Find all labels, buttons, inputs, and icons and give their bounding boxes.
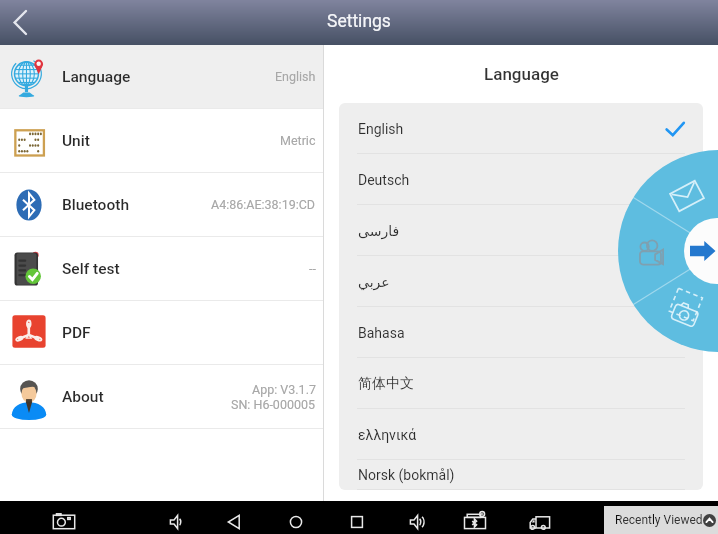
staticText: Deutsch xyxy=(358,172,410,188)
staticText: عربي xyxy=(358,274,390,290)
button[interactable]: Deutsch xyxy=(339,154,703,205)
button[interactable]: About xyxy=(0,365,323,428)
button[interactable]: Recents xyxy=(343,501,371,534)
staticText: A4:86:AE:38:19:CD xyxy=(211,197,316,212)
staticText: 简体中文 xyxy=(358,375,414,393)
button[interactable]: Volume down xyxy=(161,501,189,534)
button[interactable]: Home xyxy=(282,501,310,534)
staticText: Language xyxy=(484,64,559,84)
button[interactable]: Bahasa xyxy=(339,307,703,358)
staticText: SN: H6-000005 xyxy=(231,397,316,412)
staticText: فارسی xyxy=(358,223,400,239)
staticText: English xyxy=(275,69,316,84)
staticText: Settings xyxy=(327,11,391,32)
staticText: Bluetooth xyxy=(62,196,130,214)
staticText: Unit xyxy=(62,132,90,150)
staticText: App: V3.1.7 xyxy=(252,382,316,397)
button[interactable]: Unit xyxy=(0,109,323,172)
staticText: ελληνικά xyxy=(358,427,417,443)
button[interactable]: Norsk (bokmål) xyxy=(339,460,703,490)
other: Quick menu xyxy=(0,0,718,534)
staticText: Recently Viewed xyxy=(615,513,703,527)
button[interactable]: PDF xyxy=(0,301,323,364)
button[interactable]: ελληνικά xyxy=(339,409,703,460)
button[interactable]: Screenshot xyxy=(50,501,78,534)
button[interactable]: Recently Viewed xyxy=(604,506,718,534)
staticText: About xyxy=(62,388,104,406)
staticText: Bahasa xyxy=(358,325,405,341)
staticText: Metric xyxy=(280,133,316,148)
button[interactable]: English xyxy=(339,103,703,154)
staticText: English xyxy=(358,121,404,137)
button[interactable]: Language xyxy=(0,45,323,108)
button[interactable]: Self test xyxy=(0,237,323,300)
staticText: Self test xyxy=(62,260,120,278)
button[interactable]: فارسی xyxy=(339,205,703,256)
button[interactable]: Vehicle xyxy=(526,501,554,534)
staticText: Language xyxy=(62,68,131,86)
staticText: PDF xyxy=(62,324,91,342)
button[interactable]: Volume up xyxy=(401,501,429,534)
button[interactable]: عربي xyxy=(339,256,703,307)
staticText: Norsk (bokmål) xyxy=(358,467,455,483)
button[interactable]: Back xyxy=(220,501,248,534)
button[interactable]: Bluetooth xyxy=(0,173,323,236)
button[interactable]: 简体中文 xyxy=(339,358,703,409)
button[interactable]: Back xyxy=(0,0,45,45)
button[interactable]: Bluetooth xyxy=(461,501,489,534)
staticText: -- xyxy=(309,261,316,276)
